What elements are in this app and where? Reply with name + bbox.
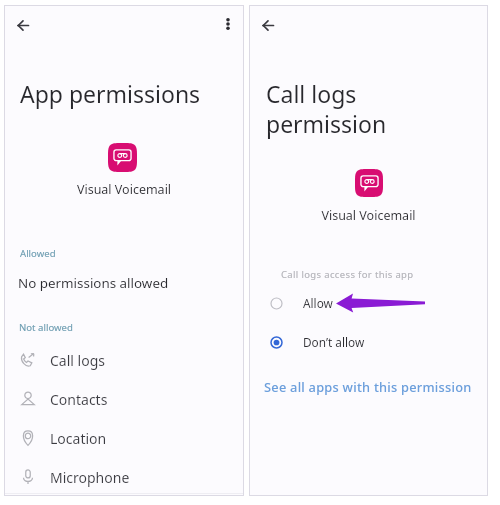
staticText: Don’t allow	[303, 334, 365, 350]
staticText: Call logs access for this app	[281, 268, 414, 281]
button[interactable]: Microphone	[5, 460, 243, 494]
staticText: Not allowed	[19, 321, 73, 334]
staticText: Visual Voicemail	[5, 181, 243, 198]
staticText: No permissions allowed	[18, 274, 169, 292]
button[interactable]: Call logs	[5, 343, 243, 377]
button[interactable]: Back	[252, 9, 284, 41]
button[interactable]: Back	[7, 9, 39, 41]
button[interactable]: See all apps with this permission	[264, 378, 472, 395]
staticText: Allow	[303, 295, 333, 311]
button[interactable]: Don’t allow	[250, 327, 487, 357]
button[interactable]: Allow	[250, 288, 487, 318]
staticText: Call logs	[50, 351, 105, 370]
staticText: App permissions	[20, 78, 201, 109]
button[interactable]: Contacts	[5, 382, 243, 416]
staticText: Location	[50, 429, 107, 448]
staticText: Microphone	[50, 468, 130, 487]
button[interactable]: Location	[5, 421, 243, 455]
staticText: Contacts	[50, 390, 108, 409]
staticText: Call logs permission	[266, 78, 387, 140]
button[interactable]: More options	[212, 8, 244, 40]
staticText: Visual Voicemail	[250, 207, 487, 224]
staticText: Allowed	[20, 247, 56, 260]
